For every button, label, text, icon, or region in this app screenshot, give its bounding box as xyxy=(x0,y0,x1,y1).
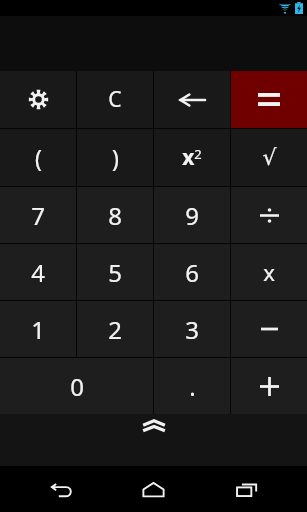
button[interactable]: 2 xyxy=(77,301,153,357)
staticText: 6 xyxy=(185,256,199,289)
staticText: 0 xyxy=(70,370,84,403)
staticText: C xyxy=(108,85,122,114)
button[interactable]: Delete xyxy=(154,71,230,128)
button[interactable]: x2 xyxy=(154,129,230,186)
staticText: 4 xyxy=(31,256,45,289)
button[interactable]: 1 xyxy=(0,301,76,357)
button[interactable]: ) xyxy=(77,129,153,186)
staticText: x xyxy=(263,257,275,287)
button[interactable]: Recent apps xyxy=(200,466,293,512)
button[interactable]: 9 xyxy=(154,187,230,243)
button[interactable]: Back xyxy=(14,466,107,512)
button[interactable]: 6 xyxy=(154,244,230,300)
button[interactable]: x xyxy=(231,244,307,300)
staticText: 9 xyxy=(185,199,199,232)
button[interactable]: Settings xyxy=(0,71,76,128)
button[interactable]: . xyxy=(154,358,230,414)
button[interactable]: Minus xyxy=(231,301,307,357)
staticText: 2 xyxy=(108,313,122,346)
button[interactable]: Divide xyxy=(231,187,307,243)
staticText: √ xyxy=(262,145,277,171)
button[interactable]: 5 xyxy=(77,244,153,300)
staticText: x2 xyxy=(182,143,202,172)
button[interactable]: Show advanced pad xyxy=(0,414,307,466)
staticText: 1 xyxy=(31,313,45,346)
button[interactable]: ( xyxy=(0,129,76,186)
button[interactable]: C xyxy=(77,71,153,128)
button[interactable]: 4 xyxy=(0,244,76,300)
button[interactable]: Equals xyxy=(231,71,307,128)
staticText: 8 xyxy=(108,199,122,232)
button[interactable]: 3 xyxy=(154,301,230,357)
button[interactable]: 0 xyxy=(0,358,153,414)
button[interactable]: 7 xyxy=(0,187,76,243)
staticText: 7 xyxy=(31,199,45,232)
staticText: ( xyxy=(35,142,42,173)
staticText: . xyxy=(189,370,196,403)
button[interactable]: Plus xyxy=(231,358,307,414)
button[interactable]: √ xyxy=(231,129,307,186)
button[interactable]: 8 xyxy=(77,187,153,243)
staticText: ) xyxy=(112,142,119,173)
staticText: 5 xyxy=(108,256,122,289)
staticText: 3 xyxy=(185,313,199,346)
button[interactable]: Home xyxy=(107,466,200,512)
